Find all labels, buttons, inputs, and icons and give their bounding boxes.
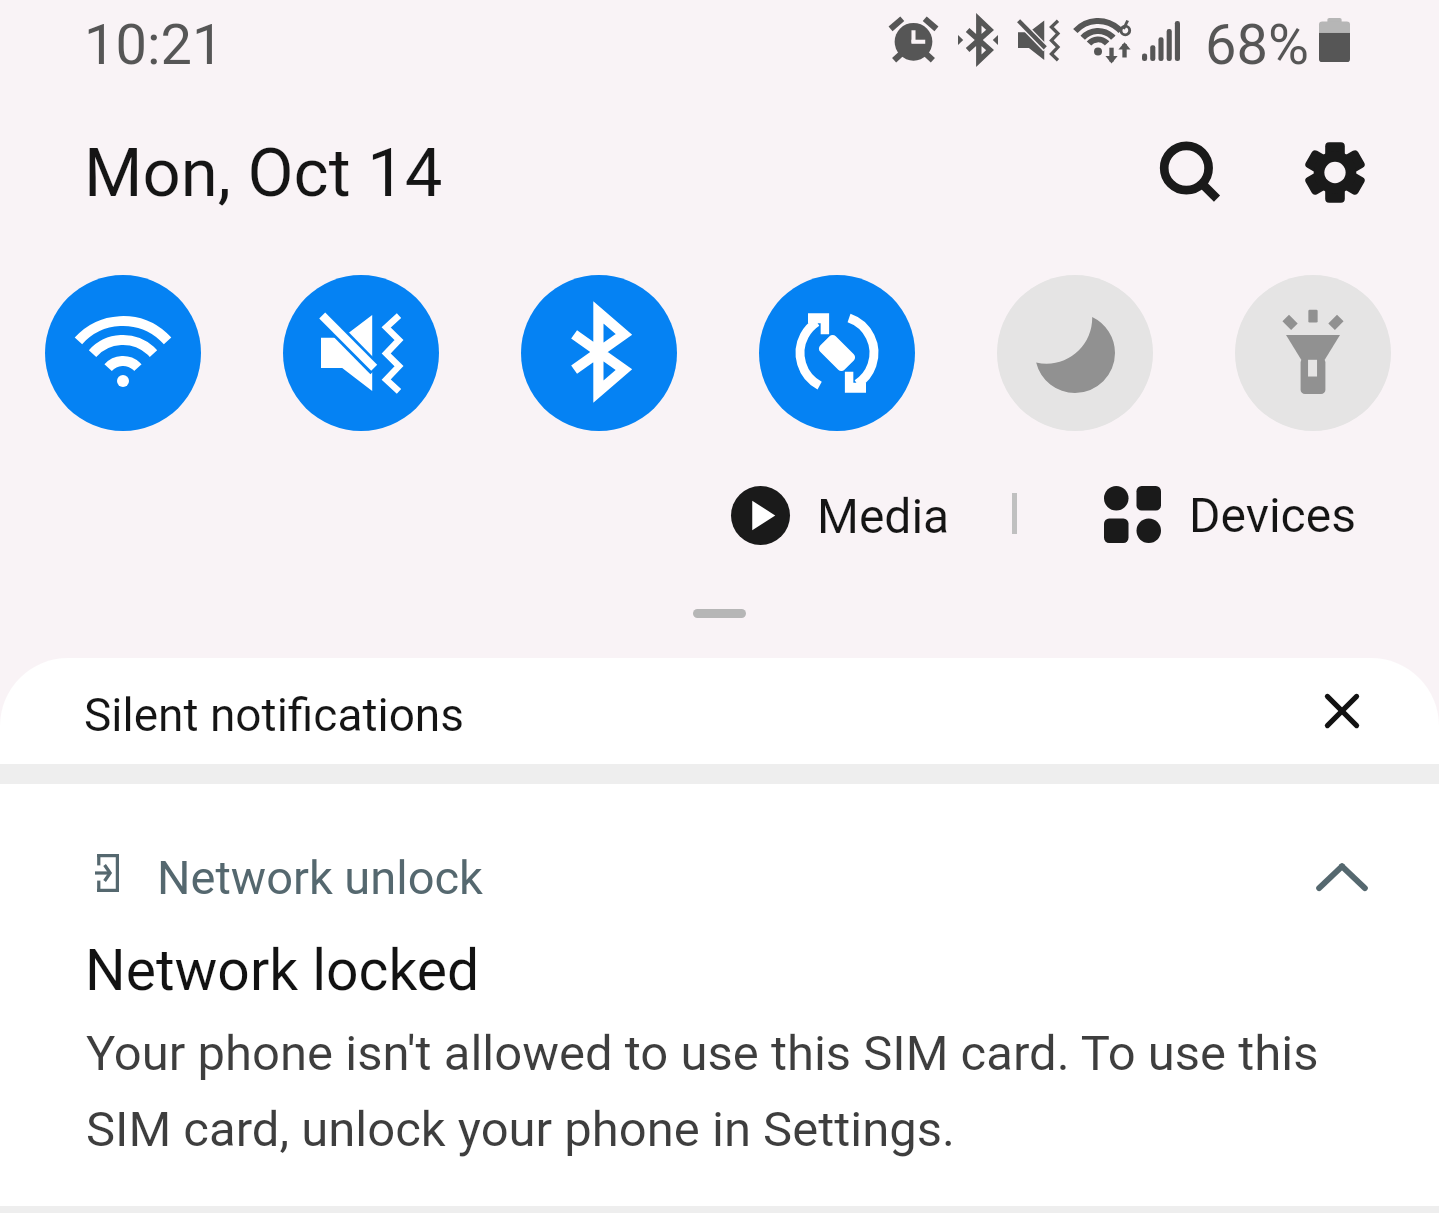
button[interactable]: Silent notifications bbox=[0, 658, 1439, 764]
button[interactable]: Network unlock bbox=[0, 784, 1439, 1206]
button[interactable]: Settings bbox=[1283, 118, 1387, 222]
button[interactable]: Wi-Fi bbox=[45, 275, 201, 431]
staticText: Media bbox=[817, 488, 950, 544]
staticText: Devices bbox=[1189, 487, 1356, 543]
staticText: Silent notifications bbox=[84, 688, 465, 742]
button[interactable]: Close bbox=[1302, 671, 1382, 751]
staticText: Mon, Oct 14 bbox=[84, 134, 443, 213]
button[interactable]: Media bbox=[731, 486, 950, 545]
button[interactable]: Sound mode bbox=[283, 275, 439, 431]
button[interactable]: Collapse bbox=[1300, 835, 1384, 919]
staticText: 68% bbox=[1205, 12, 1309, 78]
button[interactable]: Flashlight bbox=[1235, 275, 1391, 431]
button[interactable]: Search bbox=[1138, 118, 1242, 222]
staticText: 10:21 bbox=[84, 12, 224, 78]
button[interactable]: Do not disturb bbox=[997, 275, 1153, 431]
staticText: Your phone isn't allowed to use this SIM… bbox=[86, 1025, 1396, 1158]
button[interactable]: Bluetooth bbox=[521, 275, 677, 431]
staticText: Network locked bbox=[85, 937, 480, 1004]
button[interactable]: Devices bbox=[1104, 486, 1356, 543]
button[interactable]: Auto rotate bbox=[759, 275, 915, 431]
staticText: Network unlock bbox=[157, 850, 483, 905]
